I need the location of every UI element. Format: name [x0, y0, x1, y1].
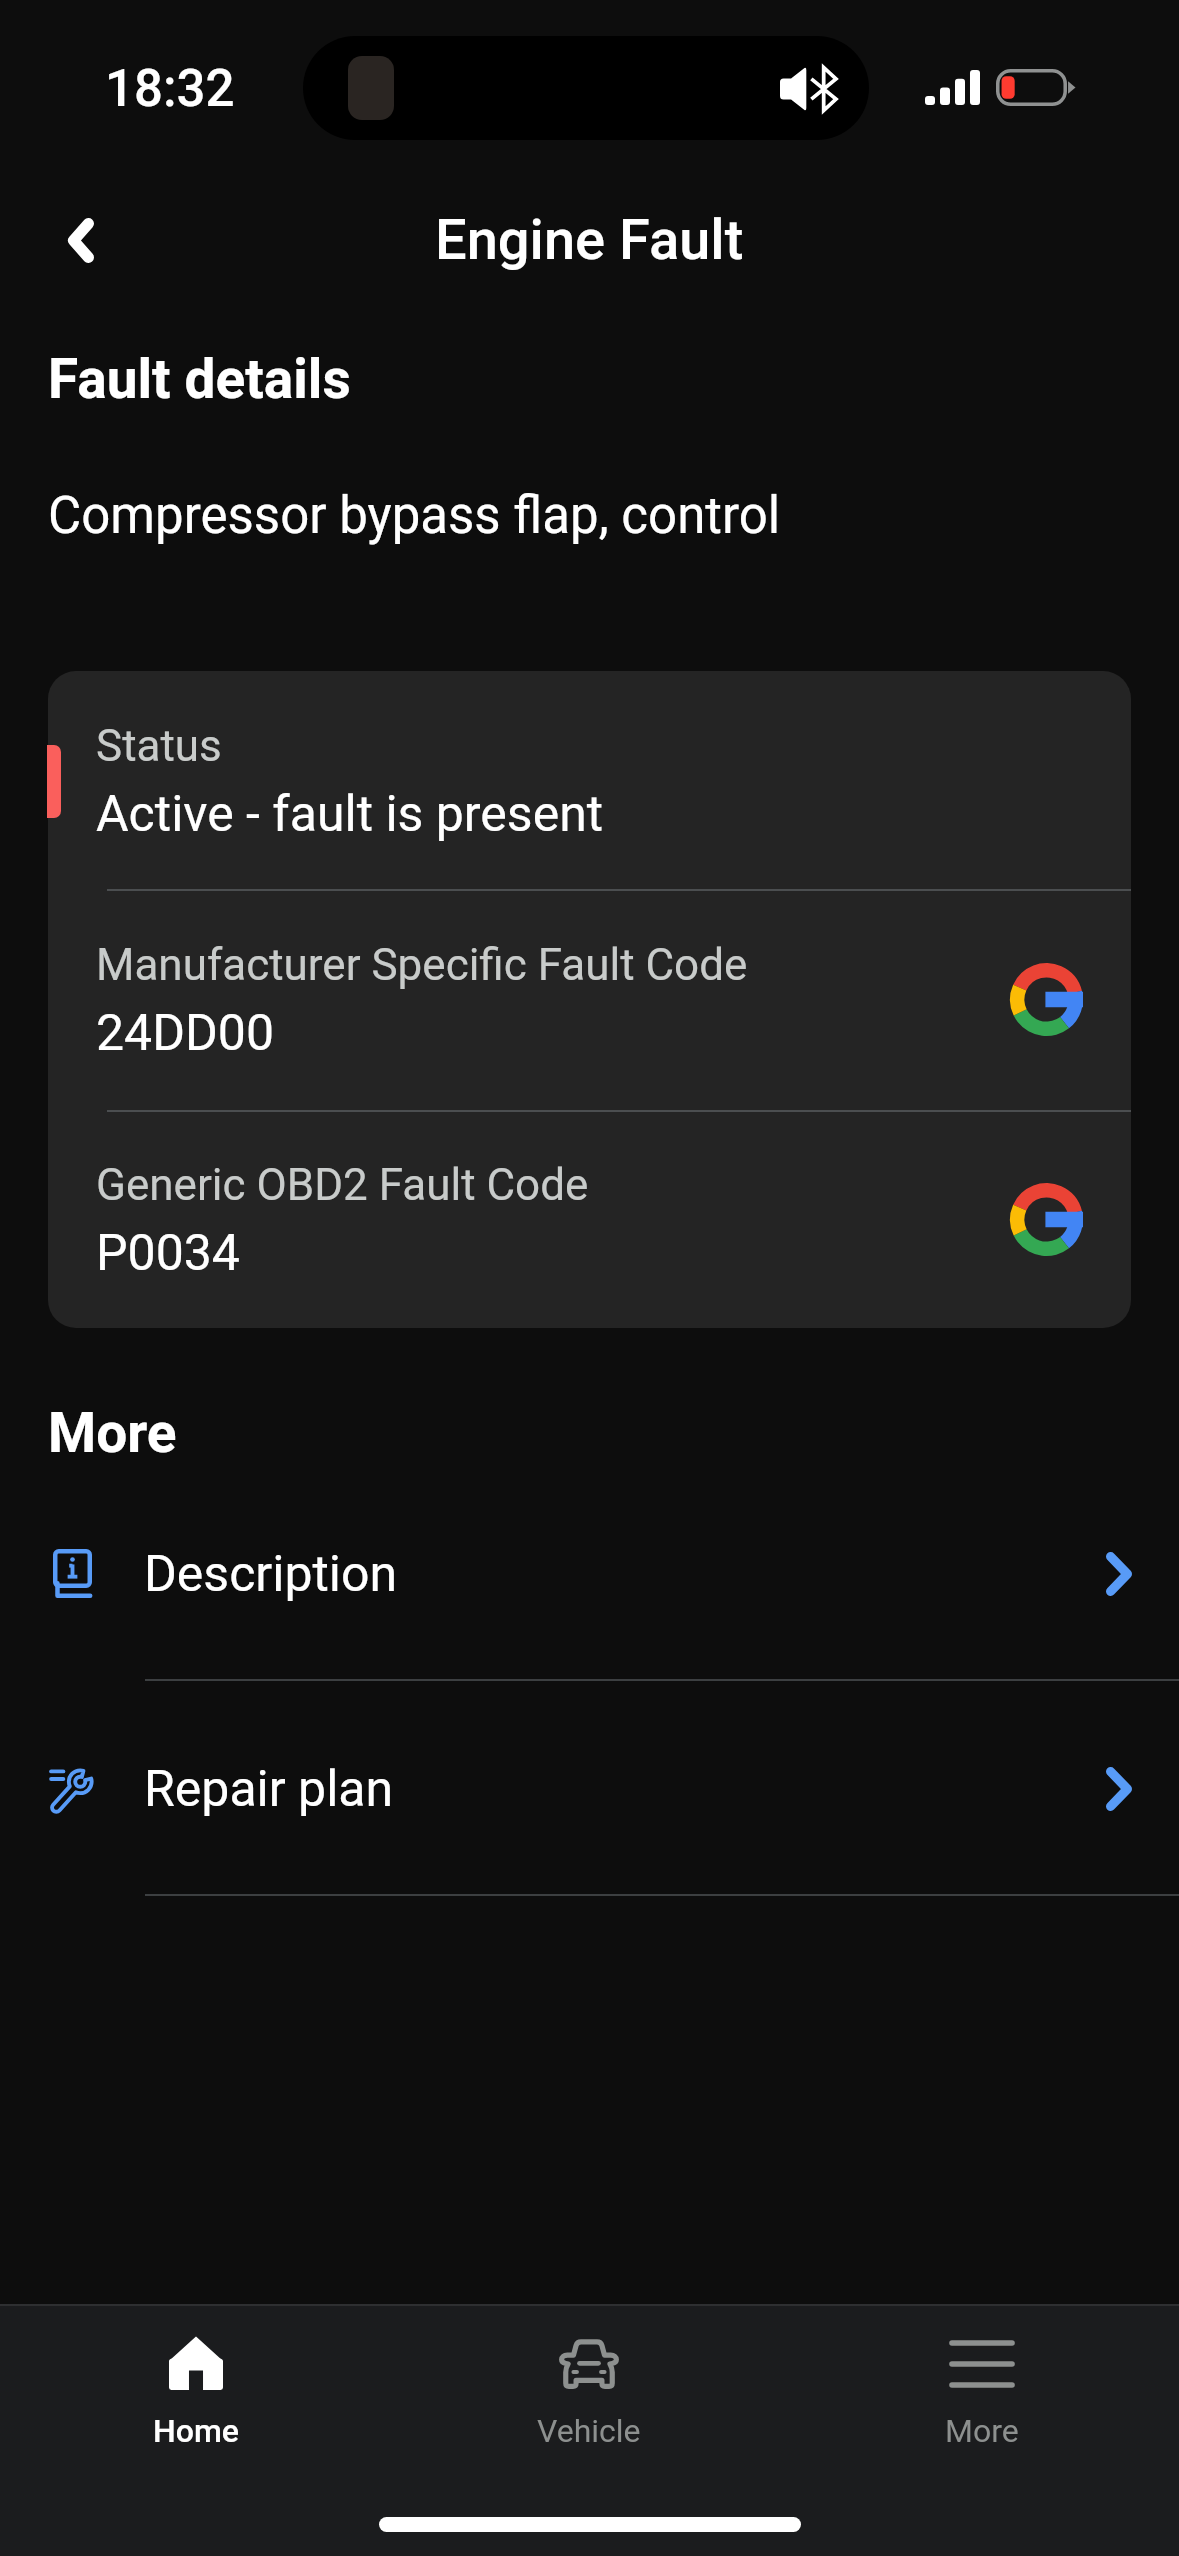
staticText: Manufacturer Specific Fault Code — [96, 939, 748, 991]
staticText: Home — [153, 2412, 239, 2450]
staticText: Description — [144, 1545, 398, 1604]
staticText: Engine Fault — [435, 207, 744, 273]
button[interactable] — [48, 891, 1131, 1110]
button[interactable]: Vehicle — [449, 2304, 729, 2484]
button[interactable]: Home — [56, 2304, 336, 2484]
staticText: Status — [96, 720, 222, 772]
staticText: Generic OBD2 Fault Code — [96, 1159, 589, 1211]
button[interactable]: More — [842, 2304, 1122, 2484]
button[interactable] — [48, 671, 1131, 889]
staticText: Vehicle — [537, 2412, 641, 2450]
staticText: 24DD00 — [96, 1004, 275, 1063]
staticText: Repair plan — [144, 1760, 394, 1819]
button[interactable]: Repair plan — [0, 1681, 1179, 1896]
button[interactable]: Back — [29, 188, 133, 292]
staticText: More — [48, 1401, 177, 1465]
staticText: Compressor bypass flap, control — [48, 486, 781, 546]
button[interactable]: Description — [0, 1466, 1179, 1681]
staticText: 18:32 — [105, 59, 235, 119]
staticText: Active - fault is present — [96, 785, 604, 844]
staticText: More — [945, 2412, 1019, 2450]
staticText: P0034 — [96, 1224, 240, 1283]
button[interactable] — [48, 1112, 1131, 1328]
staticText: Fault details — [48, 347, 351, 411]
